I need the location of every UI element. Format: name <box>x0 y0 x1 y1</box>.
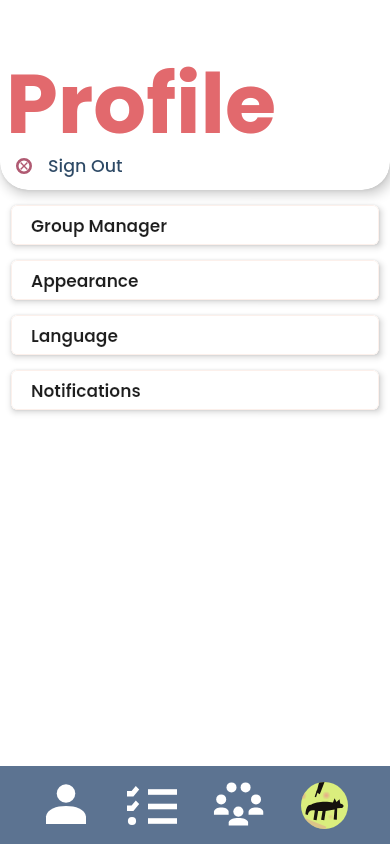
staticText: Language <box>31 324 118 348</box>
staticText: Profile <box>6 46 277 162</box>
button[interactable]: Group Manager <box>11 205 379 245</box>
button[interactable]: Sign Out <box>0 148 390 184</box>
staticText: Group Manager <box>31 214 168 238</box>
button[interactable]: Groups <box>195 766 281 844</box>
staticText: Appearance <box>31 269 139 293</box>
button[interactable]: Account <box>281 766 367 844</box>
button[interactable]: Language <box>11 315 379 355</box>
button[interactable]: Profile <box>23 766 109 844</box>
staticText: Notifications <box>31 379 141 403</box>
button[interactable]: Tasks <box>109 766 195 844</box>
staticText: Sign Out <box>48 154 123 179</box>
button[interactable]: Appearance <box>11 260 379 300</box>
button[interactable]: Notifications <box>11 370 379 410</box>
